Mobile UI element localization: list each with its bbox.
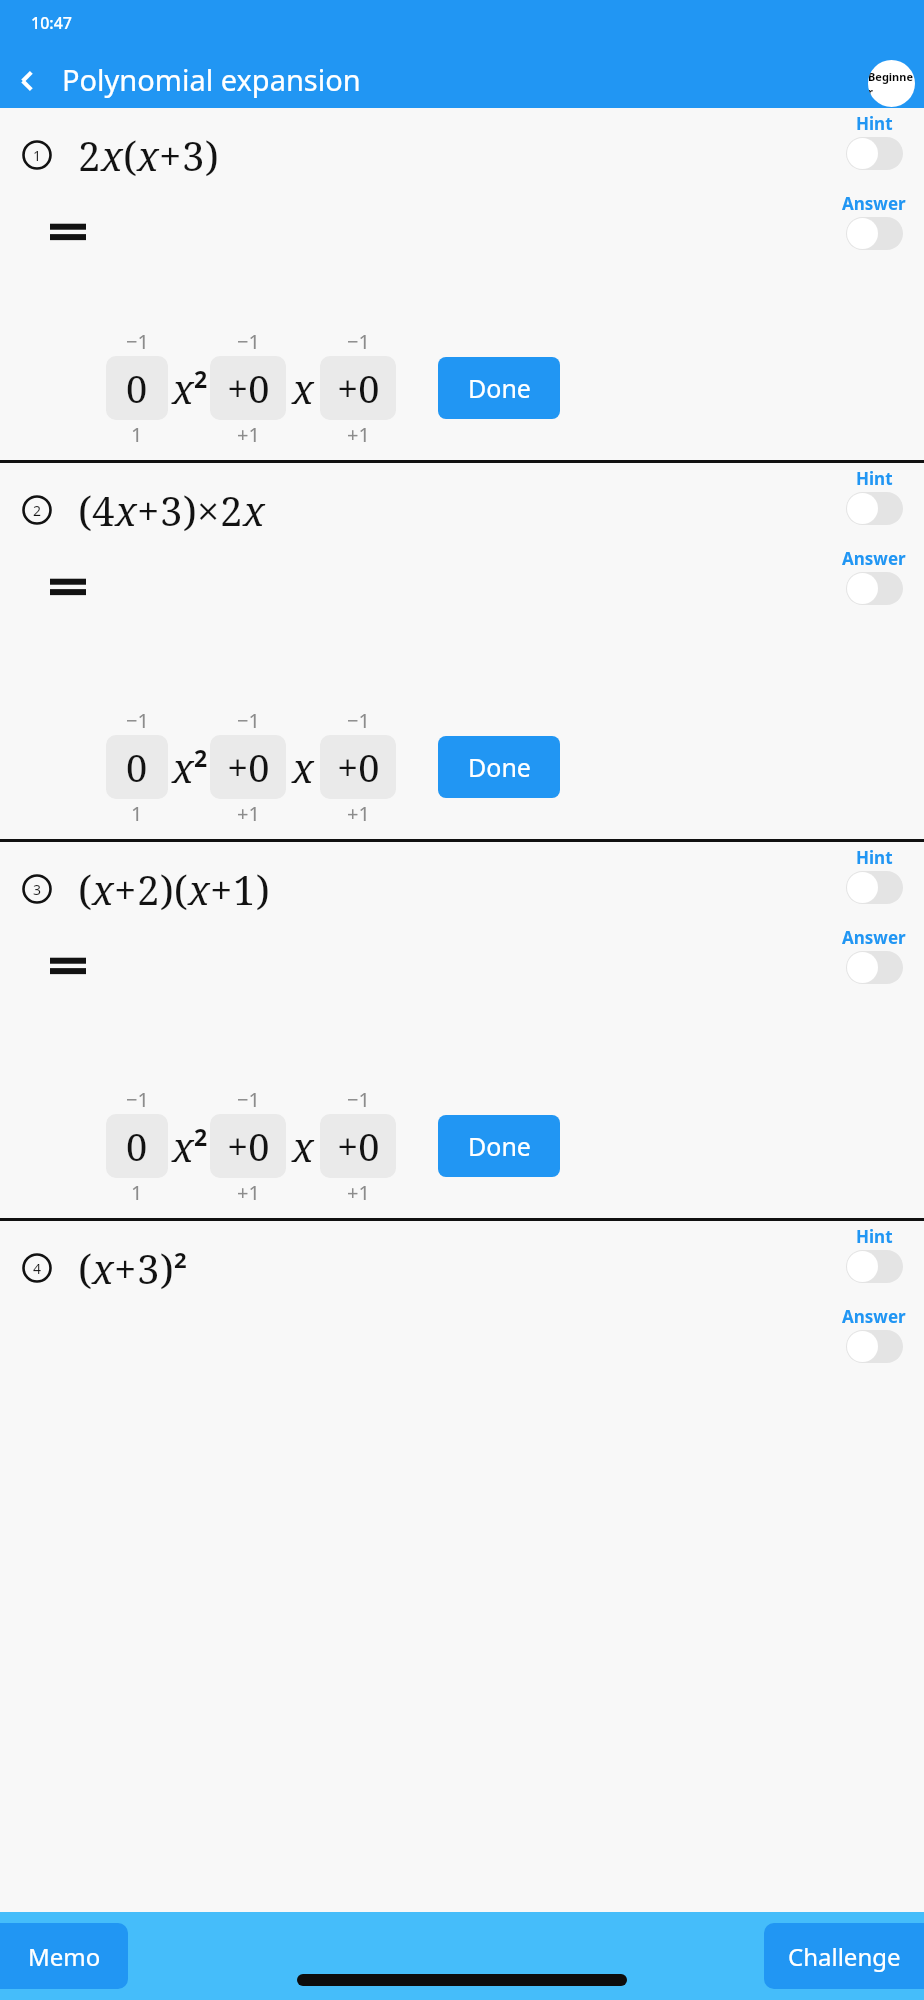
button[interactable]: Answer <box>846 1330 903 1363</box>
staticText: 2 <box>174 1244 187 1274</box>
staticText: 1 <box>233 862 256 916</box>
staticText: +0 <box>337 1120 380 1172</box>
staticText: −1 <box>237 1086 260 1113</box>
staticText: Hint <box>856 112 893 135</box>
staticText: 4 <box>92 483 115 537</box>
staticText: + <box>159 128 182 182</box>
staticText: 2 <box>194 742 208 773</box>
staticText: x <box>292 361 314 415</box>
button[interactable]: Hint <box>846 1250 903 1283</box>
staticText: 0 <box>126 362 148 414</box>
staticText: 1 <box>131 1179 143 1206</box>
button[interactable]: +0 <box>320 735 396 799</box>
staticText: + <box>137 483 160 537</box>
staticText: x <box>172 740 194 794</box>
staticText: 3 <box>137 1241 160 1295</box>
button[interactable]: +0 <box>210 735 286 799</box>
staticText: 10:47 <box>31 12 72 34</box>
staticText: 2 <box>194 363 208 394</box>
button[interactable]: Hint <box>846 137 903 170</box>
staticText: 1 <box>131 800 143 827</box>
button[interactable]: Hint <box>846 492 903 525</box>
staticText: Polynomial expansion <box>62 60 361 99</box>
staticText: x <box>172 1119 194 1173</box>
staticText: x <box>92 1241 114 1295</box>
staticText: −1 <box>347 328 370 355</box>
staticText: −1 <box>347 1086 370 1113</box>
staticText: 1 <box>33 146 42 165</box>
staticText: Answer <box>842 926 906 949</box>
button[interactable]: Beginner <box>868 60 915 107</box>
staticText: 1 <box>131 421 143 448</box>
staticText: ( <box>78 483 92 537</box>
staticText: +1 <box>347 421 370 448</box>
staticText: x <box>188 862 210 916</box>
staticText: Hint <box>856 846 893 869</box>
staticText: ( <box>78 862 92 916</box>
button[interactable]: Answer <box>846 572 903 605</box>
staticText: +1 <box>347 1179 370 1206</box>
staticText: + <box>114 1241 137 1295</box>
staticText: 3 <box>33 880 42 899</box>
button[interactable]: +0 <box>210 1114 286 1178</box>
staticText: x <box>115 483 137 537</box>
staticText: +0 <box>337 362 380 414</box>
staticText: 3 <box>182 128 205 182</box>
button[interactable]: Answer <box>846 217 903 250</box>
staticText: + <box>114 862 137 916</box>
staticText: Challenge <box>788 1940 901 1973</box>
button[interactable]: Memo <box>0 1923 128 1989</box>
staticText: Hint <box>856 467 893 490</box>
staticText: x <box>137 128 159 182</box>
staticText: ) <box>160 1241 174 1295</box>
staticText: Hint <box>856 1225 893 1248</box>
staticText: Answer <box>842 192 906 215</box>
staticText: ( <box>123 128 137 182</box>
staticText: x <box>101 128 123 182</box>
staticText: ( <box>78 1241 92 1295</box>
button[interactable]: Done <box>438 736 560 798</box>
button[interactable]: +0 <box>210 356 286 420</box>
button[interactable]: +0 <box>320 1114 396 1178</box>
staticText: 0 <box>126 1120 148 1172</box>
staticText: x <box>292 1119 314 1173</box>
staticText: −1 <box>126 1086 149 1113</box>
staticText: −1 <box>347 707 370 734</box>
staticText: )( <box>160 862 188 916</box>
button[interactable]: Hint <box>846 871 903 904</box>
staticText: Done <box>468 750 531 784</box>
staticText: 2 <box>220 483 243 537</box>
staticText: x <box>172 361 194 415</box>
button[interactable]: Answer <box>846 951 903 984</box>
staticText: x <box>292 740 314 794</box>
staticText: Answer <box>842 547 906 570</box>
staticText: 4 <box>33 1259 42 1278</box>
staticText: 2 <box>137 862 160 916</box>
staticText: + <box>210 862 233 916</box>
button[interactable]: Done <box>438 357 560 419</box>
staticText: +0 <box>227 1120 270 1172</box>
button[interactable]: +0 <box>320 356 396 420</box>
staticText: +1 <box>347 800 370 827</box>
staticText: −1 <box>126 707 149 734</box>
button[interactable]: Back <box>4 58 50 104</box>
button[interactable]: Challenge <box>764 1923 924 1989</box>
staticText: +1 <box>237 1179 260 1206</box>
staticText: 2 <box>78 128 101 182</box>
staticText: +0 <box>227 362 270 414</box>
button[interactable]: Done <box>438 1115 560 1177</box>
staticText: 3 <box>160 483 183 537</box>
staticText: −1 <box>237 707 260 734</box>
staticText: Memo <box>28 1940 101 1973</box>
staticText: −1 <box>126 328 149 355</box>
staticText: ) <box>205 128 219 182</box>
staticText: Beginner <box>868 69 915 99</box>
staticText: +0 <box>337 741 380 793</box>
staticText: +0 <box>227 741 270 793</box>
button[interactable]: 0 <box>106 735 168 799</box>
button[interactable]: 0 <box>106 1114 168 1178</box>
staticText: −1 <box>237 328 260 355</box>
staticText: +1 <box>237 800 260 827</box>
staticText: Done <box>468 1129 531 1163</box>
button[interactable]: 0 <box>106 356 168 420</box>
